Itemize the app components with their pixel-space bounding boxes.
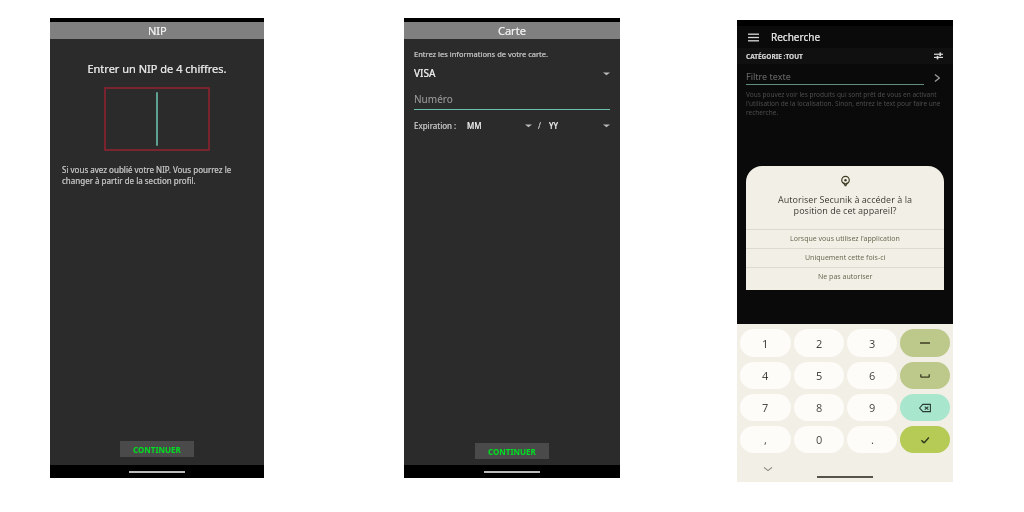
button[interactable]: Valider	[900, 426, 950, 453]
button[interactable]: 8	[794, 394, 844, 421]
button[interactable]: .	[847, 426, 897, 453]
staticText: CATÉGORIE :TOUT	[746, 52, 803, 61]
staticText: Expiration :	[414, 120, 457, 131]
staticText: 5	[816, 368, 823, 383]
staticText: 4	[762, 368, 769, 383]
button[interactable]: Effacer	[900, 394, 950, 421]
staticText: .	[871, 432, 874, 447]
staticText: Recherche	[771, 30, 821, 44]
button[interactable]: Espace	[900, 362, 950, 389]
staticText: 6	[869, 368, 876, 383]
button[interactable]: Menu	[746, 30, 760, 44]
staticText: /	[538, 120, 541, 131]
staticText: Numéro	[414, 92, 453, 106]
button[interactable]: Filtres	[932, 50, 944, 62]
button[interactable]: Numéro	[414, 92, 610, 110]
button[interactable]	[105, 88, 209, 150]
staticText: 2	[816, 336, 823, 351]
staticText: Ne pas autoriser	[818, 272, 873, 282]
button[interactable]: Ne pas autoriser	[746, 268, 944, 286]
staticText: 3	[869, 336, 876, 351]
button[interactable]: 0	[794, 426, 844, 453]
staticText: ,	[764, 432, 767, 447]
button[interactable]: ,	[740, 426, 791, 453]
staticText: YY	[549, 120, 559, 131]
staticText: Entrez les informations de votre carte.	[414, 49, 548, 59]
button[interactable]: Rechercher	[930, 71, 944, 85]
staticText: Uniquement cette fois-ci	[805, 253, 886, 263]
staticText: CONTINUER	[133, 444, 181, 455]
staticText: Entrer un NIP de 4 chiffres.	[50, 61, 264, 76]
button[interactable]: 5	[794, 362, 844, 389]
staticText: Si vous avez oublié votre NIP. Vous pour…	[62, 164, 234, 186]
staticText: CONTINUER	[488, 446, 536, 457]
button[interactable]: CONTINUER	[475, 443, 549, 459]
button[interactable]: Uniquement cette fois-ci	[746, 249, 944, 267]
button[interactable]: 7	[740, 394, 791, 421]
button[interactable]: 6	[847, 362, 897, 389]
staticText: MM	[467, 120, 482, 131]
button[interactable]: 3	[847, 329, 897, 357]
staticText: Autoriser Secunik à accéder à la positio…	[760, 193, 930, 217]
button[interactable]: 1	[740, 329, 791, 357]
staticText: Lorsque vous utilisez l'application	[790, 234, 900, 244]
button[interactable]: CONTINUER	[120, 441, 194, 457]
staticText: Filtre texte	[746, 70, 791, 82]
button[interactable]: Moins	[900, 329, 950, 357]
button[interactable]: Lorsque vous utilisez l'application	[746, 230, 944, 248]
button[interactable]: Masquer le clavier	[762, 463, 774, 475]
staticText: VISA	[414, 66, 436, 80]
staticText: 8	[816, 400, 823, 415]
staticText: 7	[762, 400, 769, 415]
button[interactable]: 2	[794, 329, 844, 357]
staticText: 0	[816, 432, 823, 447]
button[interactable]: 9	[847, 394, 897, 421]
button[interactable]: Filtre texte	[746, 70, 944, 85]
button[interactable]: 4	[740, 362, 791, 389]
staticText: Vous pouvez voir les produits qui sont p…	[746, 90, 944, 117]
staticText: 9	[869, 400, 876, 415]
staticText: Carte	[498, 23, 526, 38]
staticText: 1	[762, 336, 769, 351]
staticText: NIP	[148, 23, 167, 38]
button[interactable]: VISA	[414, 66, 610, 80]
